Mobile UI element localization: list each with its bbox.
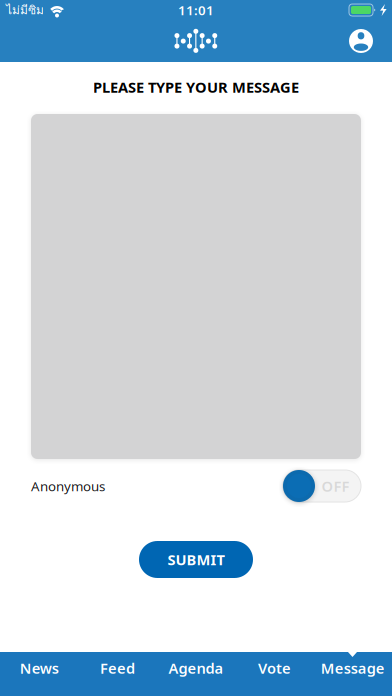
staticText: OFF <box>321 476 349 496</box>
staticText: Vote <box>258 658 291 678</box>
button[interactable]: Message <box>314 652 392 684</box>
staticText: SUBMIT <box>167 550 224 569</box>
staticText: ไม่มีซิม <box>6 1 44 19</box>
staticText: PLEASE TYPE YOUR MESSAGE <box>93 77 299 97</box>
button[interactable]: News <box>0 652 78 684</box>
button[interactable]: Account <box>349 29 392 53</box>
staticText: Message <box>321 658 385 678</box>
button[interactable]: Anonymous toggle <box>283 470 361 502</box>
button[interactable]: Vote <box>235 652 314 684</box>
button[interactable]: Feed <box>78 652 157 684</box>
staticText: Feed <box>100 658 135 678</box>
staticText: Agenda <box>168 658 223 678</box>
staticText: News <box>20 658 59 678</box>
staticText: Anonymous <box>31 477 105 495</box>
button[interactable]: SUBMIT <box>139 541 253 578</box>
staticText: 11:01 <box>178 1 214 19</box>
button[interactable]: Agenda <box>157 652 235 684</box>
